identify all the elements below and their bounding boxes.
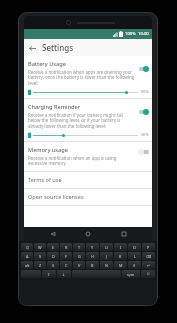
staticText: Terms of use — [28, 176, 62, 184]
button[interactable]: sym — [122, 270, 140, 278]
staticText: C — [65, 263, 68, 268]
button[interactable]: ↵ — [142, 261, 155, 269]
staticText: U — [105, 245, 108, 250]
staticText: V — [78, 263, 81, 268]
button[interactable]: L — [128, 252, 141, 260]
staticText: L — [134, 254, 136, 259]
button[interactable]: W — [34, 243, 46, 251]
button[interactable]: ⇧ — [42, 270, 56, 278]
staticText: R — [65, 245, 68, 250]
staticText: ⌸ — [147, 272, 150, 276]
staticText: K — [119, 254, 122, 259]
staticText: Q — [26, 245, 29, 250]
button[interactable]: N — [100, 261, 113, 269]
staticText: $ — [133, 263, 136, 268]
button[interactable]: 30% — [28, 132, 149, 138]
button[interactable]: D — [47, 252, 59, 260]
staticText: ⇧ — [47, 272, 51, 276]
button[interactable]: Home — [81, 227, 95, 241]
staticText: Receive a notification if your battery m… — [28, 112, 135, 130]
button[interactable]: B — [86, 261, 99, 269]
staticText: B — [91, 263, 94, 268]
staticText: 30% — [140, 132, 149, 138]
staticText: ↓ — [62, 272, 66, 276]
staticText: alt — [25, 263, 30, 268]
staticText: N — [105, 263, 108, 268]
staticText: Open source licenses — [28, 193, 84, 201]
button[interactable]: A — [21, 252, 33, 260]
staticText: J — [106, 254, 108, 259]
button[interactable]: Open source licenses — [24, 189, 152, 205]
staticText: Y — [91, 245, 94, 250]
button[interactable]: R — [60, 243, 72, 251]
staticText: P — [147, 245, 150, 250]
button[interactable]: I — [114, 243, 127, 251]
button[interactable]: J — [100, 252, 113, 260]
staticText: T — [78, 245, 81, 250]
staticText: 100% — [125, 31, 136, 37]
button[interactable]: Terms of use — [24, 172, 152, 188]
staticText: 90% — [140, 89, 149, 95]
staticText: O — [133, 245, 136, 250]
button[interactable]: E — [47, 243, 59, 251]
button[interactable]: Memory usage — [24, 142, 152, 171]
staticText: A — [26, 254, 29, 259]
staticText: E — [52, 245, 55, 250]
button[interactable]: Back — [26, 42, 38, 54]
button[interactable]: ⌸ — [141, 270, 155, 278]
button[interactable]: Y — [86, 243, 99, 251]
staticText: Z — [39, 263, 42, 268]
button[interactable]: $ — [128, 261, 141, 269]
button[interactable]: C — [60, 261, 72, 269]
button[interactable]: U — [100, 243, 113, 251]
staticText: ↵ — [147, 263, 151, 267]
button[interactable]: Z — [34, 261, 46, 269]
button[interactable]: Toggle off — [138, 148, 149, 155]
button[interactable]: Toggle on — [138, 108, 149, 115]
button[interactable]: V — [73, 261, 85, 269]
staticText: S — [39, 254, 42, 259]
staticText: 10:00 — [138, 31, 149, 37]
button[interactable]: Battery Usage — [24, 56, 152, 98]
button[interactable]: Toggle on — [138, 65, 149, 72]
staticText: M — [119, 263, 123, 268]
button[interactable]: P — [142, 243, 155, 251]
button[interactable]: ⌫ — [142, 252, 155, 260]
staticText: D — [52, 254, 55, 259]
button[interactable]: alt — [21, 261, 33, 269]
button[interactable]: Back — [46, 227, 60, 241]
staticText: Settings — [42, 42, 74, 53]
staticText: X — [52, 263, 55, 268]
button[interactable]: T — [73, 243, 85, 251]
button[interactable]: Recents — [117, 227, 131, 241]
button[interactable]: S — [34, 252, 46, 260]
button[interactable]: F — [60, 252, 72, 260]
button[interactable]: ↓ — [57, 270, 71, 278]
button[interactable]: M — [114, 261, 127, 269]
button[interactable]: G — [73, 252, 85, 260]
staticText: Memory usage — [28, 146, 68, 154]
staticText: ⌫ — [146, 254, 152, 258]
button[interactable]: Q — [21, 243, 33, 251]
staticText: Receive a notification when an app is us… — [28, 155, 135, 167]
staticText: W — [38, 245, 42, 250]
staticText: H — [91, 254, 94, 259]
button[interactable]: key — [72, 270, 121, 278]
button[interactable]: O — [128, 243, 141, 251]
staticText: sym — [127, 272, 135, 277]
button[interactable]: Charging Reminder — [24, 99, 152, 141]
staticText: I — [120, 245, 122, 250]
button[interactable]: K — [114, 252, 127, 260]
button[interactable]: H — [86, 252, 99, 260]
button[interactable]: 90% — [28, 89, 149, 95]
button[interactable]: X — [47, 261, 59, 269]
staticText: Battery Usage — [28, 60, 66, 68]
staticText: G — [78, 254, 81, 259]
staticText: F — [65, 254, 67, 259]
staticText: Receive a notification when apps are dra… — [28, 69, 135, 87]
staticText: Charging Reminder — [28, 103, 81, 111]
button[interactable]: key — [21, 270, 41, 278]
